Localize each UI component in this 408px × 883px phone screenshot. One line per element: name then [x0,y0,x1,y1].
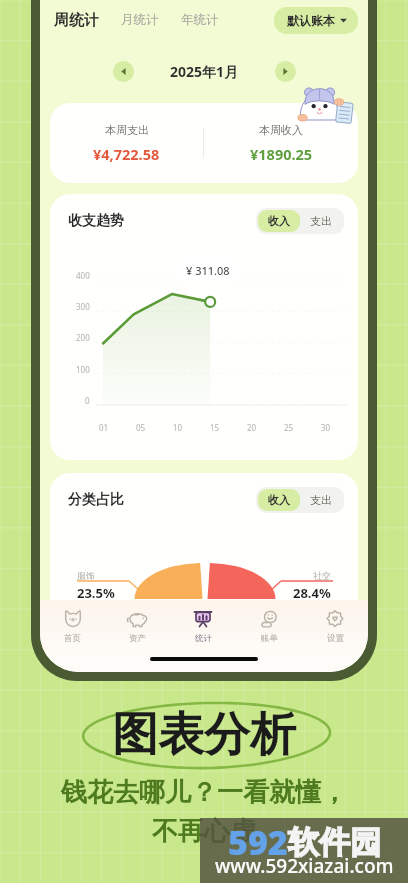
staticText: 服饰 [77,570,95,581]
button[interactable]: 首页 [40,600,105,652]
staticText: 05 [136,422,146,433]
button[interactable]: 本周支出 [50,103,358,183]
staticText: 收入 [268,214,290,228]
button[interactable]: 资产 [105,600,170,652]
button[interactable]: 月统计 [119,6,161,34]
button[interactable]: 周统计 [52,5,101,36]
staticText: 28.4% [293,584,331,602]
button[interactable]: 年统计 [179,6,221,34]
staticText: 社交 [313,570,331,581]
staticText: 0 [85,395,90,406]
staticText: 不再心虚 [152,815,256,848]
staticText: 月统计 [121,12,159,28]
button[interactable]: Previous period [113,61,134,82]
staticText: 本周支出 [105,123,149,137]
button[interactable]: 收入 [258,489,300,511]
staticText: 592 [228,819,288,865]
staticText: 分类占比 [68,491,124,509]
staticText: 2025年1月 [170,62,239,81]
button[interactable]: 支出 [300,489,342,511]
staticText: 10 [173,422,183,433]
button[interactable]: 统计 [170,600,236,652]
staticText: 默认账本 [287,13,335,28]
staticText: 钱花去哪儿？一看就懂， [61,776,347,809]
button[interactable]: 账单 [236,600,302,652]
staticText: 100 [76,364,90,375]
staticText: 20 [247,422,257,433]
staticText: 30 [321,422,331,433]
staticText: 设置 [327,633,344,644]
staticText: 首页 [64,633,81,644]
staticText: www.592xiazai.com [215,853,394,879]
staticText: 23.5% [77,584,115,602]
button[interactable]: 支出 [300,210,342,232]
button[interactable]: 设置 [302,600,368,652]
staticText: 200 [76,332,90,343]
staticText: 统计 [195,633,212,644]
staticText: 软件园 [288,823,381,862]
staticText: ¥ 311.08 [186,263,230,278]
staticText: 本周收入 [259,123,303,137]
button[interactable]: 收入 [258,210,300,232]
staticText: 资产 [129,633,146,644]
staticText: 图表分析 [112,706,296,764]
staticText: 账单 [261,633,278,644]
button[interactable]: Next period [275,61,296,82]
staticText: 300 [76,301,90,312]
staticText: 年统计 [181,12,219,28]
staticText: 400 [76,270,90,281]
button[interactable]: 默认账本 [274,7,358,34]
staticText: 支出 [310,214,332,228]
staticText: 15 [210,422,220,433]
staticText: ¥4,722.58 [93,144,160,164]
staticText: 收入 [268,493,290,507]
staticText: ¥1890.25 [250,144,313,164]
staticText: 25 [284,422,294,433]
staticText: 01 [99,422,109,433]
staticText: 收支趋势 [68,212,124,230]
staticText: 周统计 [54,11,99,30]
staticText: 支出 [310,493,332,507]
